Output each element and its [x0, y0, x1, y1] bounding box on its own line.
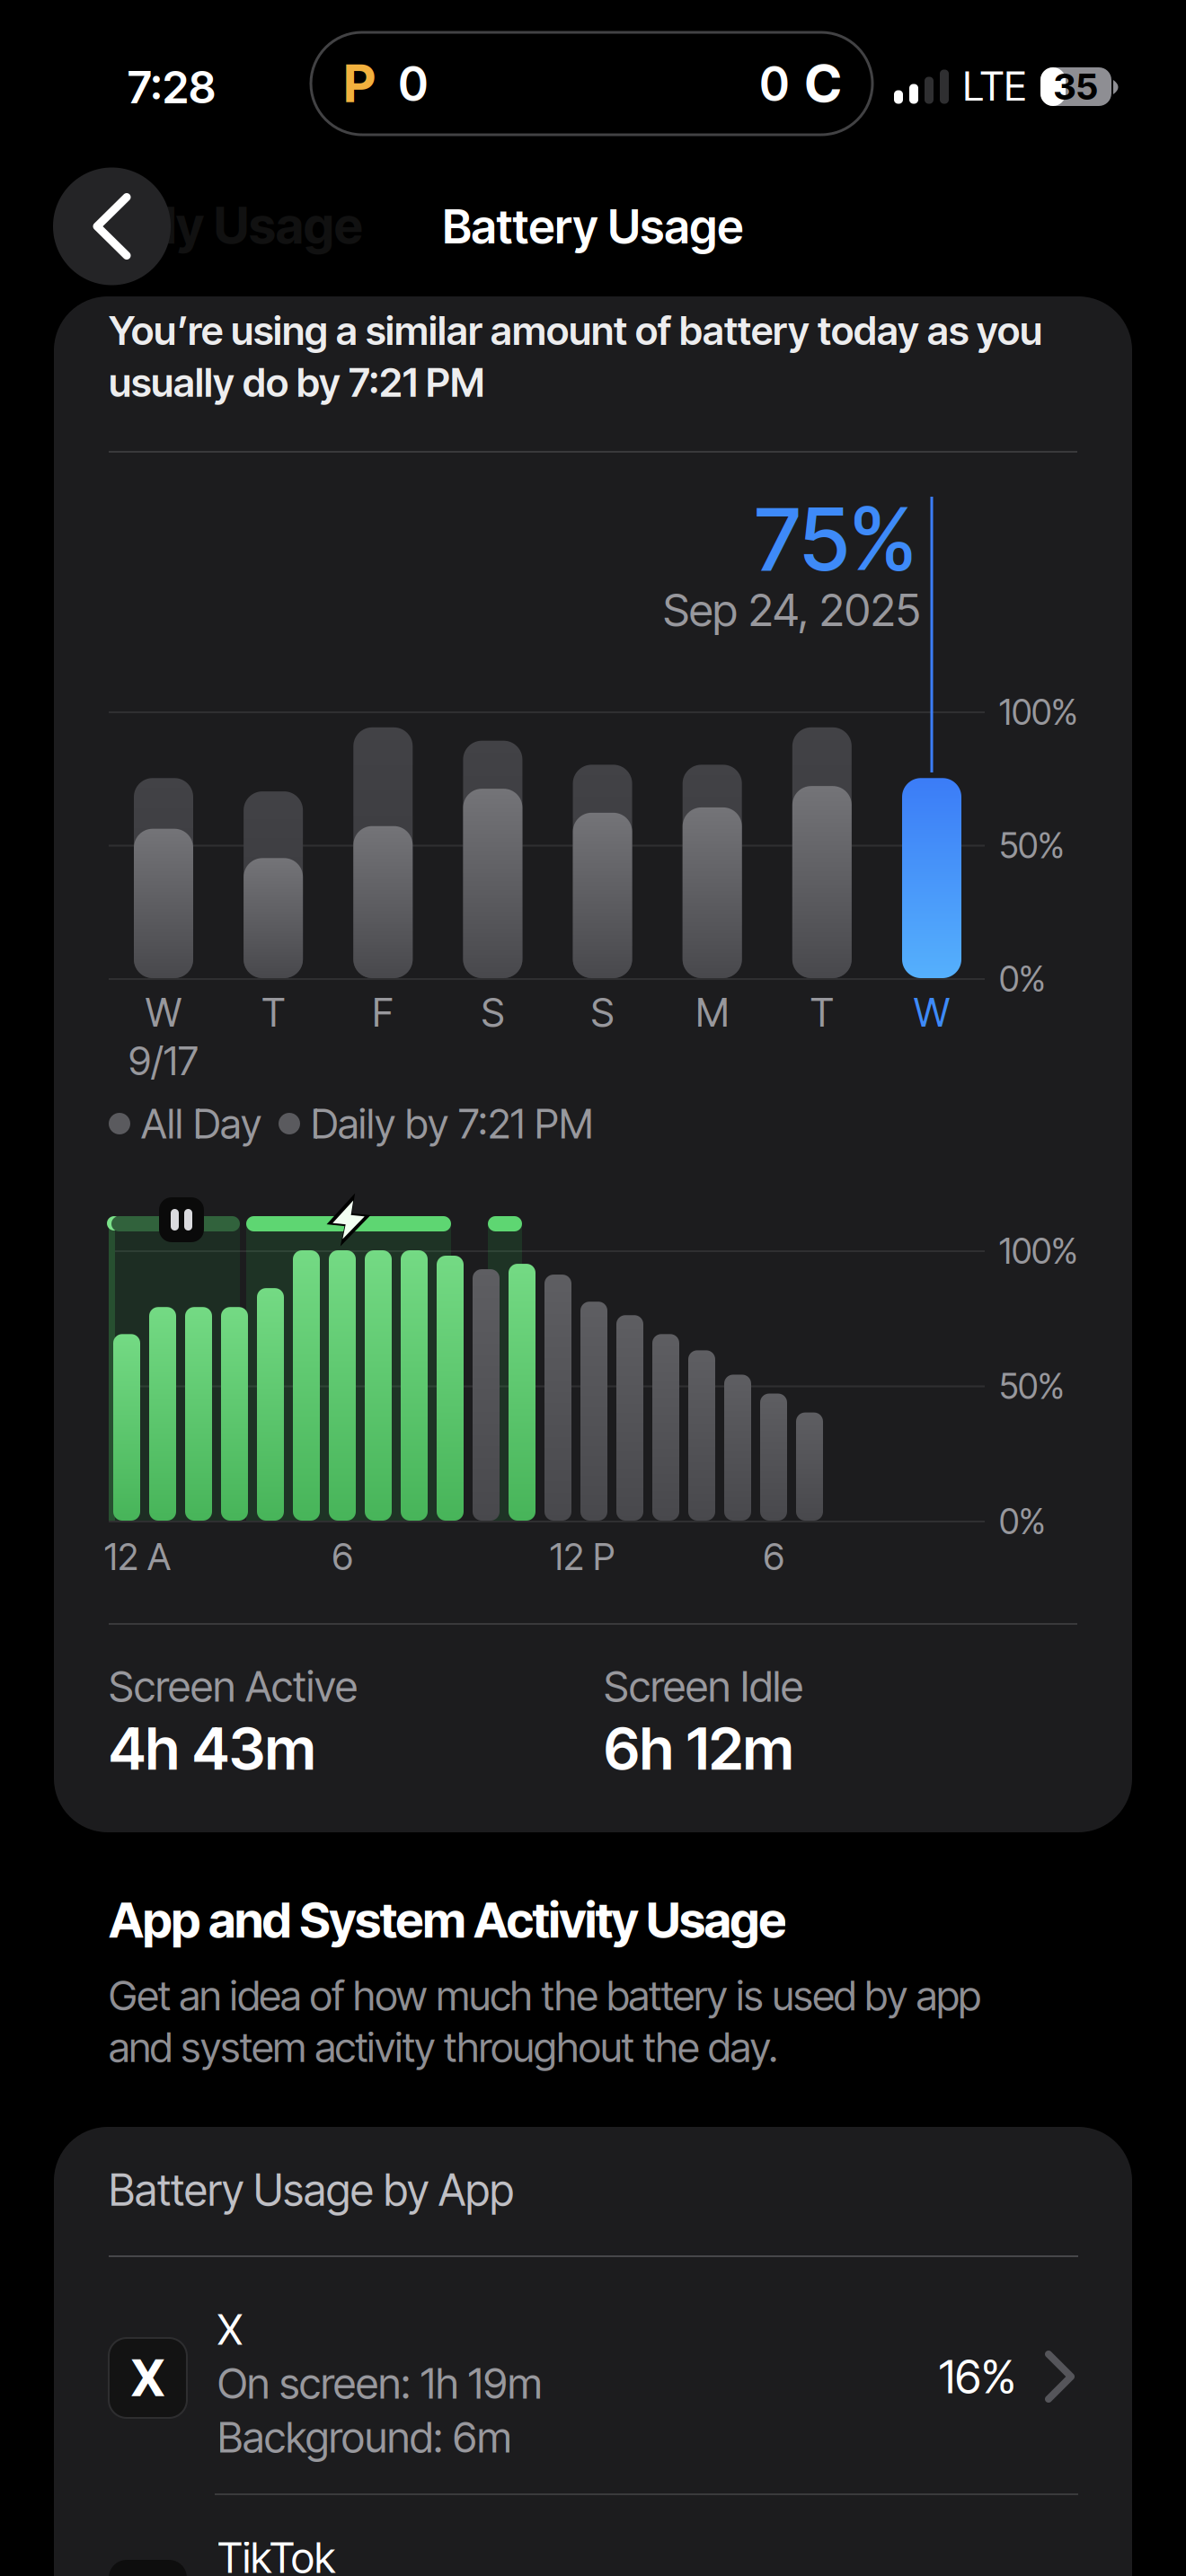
staticText: T: [810, 989, 834, 1036]
staticText: S: [591, 989, 614, 1036]
staticText: 6: [763, 1535, 784, 1578]
staticText: T: [262, 989, 285, 1036]
staticText: 0: [398, 56, 428, 111]
button[interactable]: X: [109, 2305, 1078, 2507]
staticText: W: [914, 989, 950, 1036]
staticText: X: [217, 2305, 243, 2354]
staticText: 9/17: [128, 1037, 199, 1084]
staticText: S: [481, 989, 504, 1036]
staticText: 100%: [999, 1231, 1078, 1272]
staticText: 16%: [939, 2350, 1016, 2403]
staticText: You’re using a similar amount of battery…: [109, 307, 1042, 406]
staticText: All Day: [141, 1100, 261, 1148]
staticText: 12 P: [550, 1535, 615, 1578]
staticText: 6: [332, 1535, 353, 1578]
staticText: P: [344, 53, 375, 114]
staticText: Screen Idle: [604, 1662, 803, 1711]
staticText: Daily by 7:21 PM: [311, 1100, 593, 1148]
staticText: TikTok: [217, 2533, 335, 2576]
staticText: Sep 24, 2025: [663, 584, 920, 636]
button[interactable]: TikTok: [109, 2506, 1078, 2576]
staticText: App and System Activity Usage: [109, 1891, 787, 1949]
staticText: ily Usage: [153, 196, 363, 255]
staticText: LTE: [963, 62, 1027, 110]
staticText: 50%: [999, 1366, 1065, 1407]
staticText: F: [372, 989, 394, 1036]
staticText: 50%: [999, 825, 1065, 866]
staticText: Get an idea of how much the battery is u…: [109, 1972, 981, 2071]
staticText: 4h 43m: [109, 1714, 315, 1783]
staticText: Battery Usage: [443, 199, 743, 254]
button[interactable]: Live Activity: [311, 32, 872, 135]
button[interactable]: Back: [53, 168, 171, 285]
staticText: W: [146, 989, 181, 1036]
staticText: 0: [760, 56, 789, 111]
staticText: Background: 6m: [217, 2413, 511, 2462]
staticText: Screen Active: [109, 1662, 358, 1711]
staticText: 75%: [755, 488, 916, 590]
staticText: 35: [1053, 65, 1098, 108]
staticText: X: [131, 2348, 165, 2408]
staticText: M: [696, 989, 729, 1036]
staticText: On screen: 1h 19m: [217, 2359, 542, 2408]
staticText: 7:28: [128, 61, 216, 113]
staticText: 6h 12m: [604, 1714, 793, 1783]
staticText: 100%: [999, 692, 1078, 733]
staticText: 0%: [999, 959, 1046, 1000]
staticText: 0%: [999, 1501, 1046, 1542]
staticText: 12 A: [104, 1535, 171, 1578]
staticText: C: [805, 53, 841, 114]
staticText: Battery Usage by App: [109, 2165, 514, 2215]
